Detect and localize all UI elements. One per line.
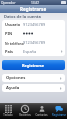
button[interactable]: Registrarse (50, 103, 67, 119)
staticText: España (23, 49, 37, 54)
button[interactable]: Registrarse (2, 60, 65, 70)
staticText: Registrarse (52, 113, 66, 117)
staticText: Registrarse (20, 6, 47, 12)
button[interactable]: Teclado (0, 103, 16, 119)
button[interactable]: Contactos (33, 103, 50, 119)
staticText: 9123456789 (23, 40, 46, 45)
staticText: Opciones (6, 75, 26, 81)
staticText: Recientes (19, 113, 31, 117)
button[interactable]: Ayuda (2, 84, 65, 92)
staticText: País (5, 49, 13, 54)
button[interactable]: Recientes (16, 103, 33, 119)
button[interactable]: PIN (2, 29, 65, 38)
staticText: Registrarse (22, 63, 45, 68)
staticText: Nº teléfono (5, 41, 24, 45)
button[interactable]: País (2, 47, 65, 56)
staticText: PIN (5, 31, 13, 36)
staticText: Contactos (35, 113, 48, 117)
staticText: Usuario (5, 22, 21, 27)
button[interactable]: Opciones (2, 74, 65, 82)
staticText: 9123456789 (23, 22, 46, 27)
staticText: Operador (1, 1, 16, 5)
staticText: Datos de la cuenta (4, 14, 41, 19)
staticText: Teclado (3, 113, 13, 117)
staticText: 13:37 (31, 1, 40, 5)
button[interactable]: Nº teléfono (2, 38, 65, 47)
staticText: Ayuda (6, 85, 20, 91)
button[interactable]: Usuario (2, 20, 65, 29)
